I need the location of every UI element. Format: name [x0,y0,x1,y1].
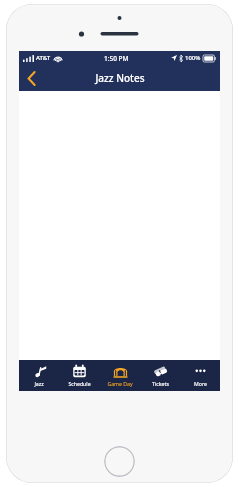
button[interactable]: Game Day [100,360,140,391]
staticText: 100% [185,54,201,62]
staticText: Schedule [68,380,91,387]
button[interactable]: Tickets [140,360,180,391]
button[interactable]: Back [19,65,43,91]
button[interactable]: Jazz [19,360,59,391]
button[interactable]: Home [104,446,135,477]
button[interactable]: More [180,360,220,391]
staticText: Jazz [34,380,44,387]
staticText: More [194,380,207,387]
button[interactable]: Schedule [59,360,99,391]
staticText: Tickets [152,380,169,387]
staticText: 1:50 PM [104,54,129,63]
staticText: Game Day [107,380,133,387]
staticText: AT&T [36,54,51,62]
staticText: Jazz Notes [95,71,145,85]
